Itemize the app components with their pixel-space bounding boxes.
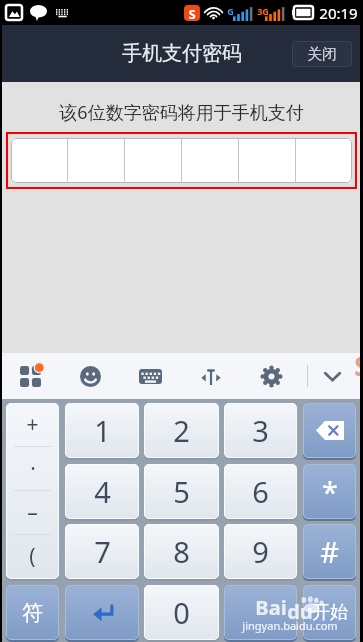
button[interactable]: 6 <box>224 464 297 519</box>
button[interactable]: 3 <box>224 403 297 458</box>
button[interactable]: Return <box>65 585 139 640</box>
staticText: 2 <box>173 411 190 450</box>
staticText: 开始 <box>312 601 348 624</box>
staticText: 5 <box>173 472 190 511</box>
staticText: + <box>26 410 39 439</box>
staticText: S <box>354 348 363 383</box>
button[interactable]: 符 <box>6 585 59 640</box>
staticText: jingyan.baidu.com <box>242 618 338 633</box>
staticText: * <box>322 472 338 511</box>
staticText: · <box>30 454 36 483</box>
button[interactable]: Keyboard <box>120 353 180 399</box>
staticText: 20:19 <box>319 3 358 23</box>
button[interactable]: 2 <box>144 403 219 458</box>
button[interactable]: 7 <box>65 524 139 579</box>
staticText: 1 <box>94 411 111 450</box>
staticText: G <box>227 5 234 17</box>
staticText: 3 <box>252 411 269 450</box>
staticText: 关闭 <box>307 45 337 64</box>
button[interactable]: 关闭 <box>292 41 352 67</box>
staticText: 8 <box>173 532 190 571</box>
button[interactable]: Apps <box>0 353 60 399</box>
button[interactable]: 1 <box>65 403 139 458</box>
button[interactable]: 开始 <box>303 585 356 640</box>
staticText: – <box>27 498 38 527</box>
staticText: Bai <box>255 594 287 621</box>
button[interactable]: Cursor <box>180 353 241 399</box>
button[interactable]: Settings <box>241 353 302 399</box>
button[interactable]: # <box>303 524 356 579</box>
staticText: 9 <box>252 532 269 571</box>
button[interactable]: Symbols <box>6 403 59 579</box>
button[interactable]: 4 <box>65 464 139 519</box>
staticText: # <box>320 532 339 571</box>
button[interactable]: Space <box>224 585 297 640</box>
staticText: S <box>188 5 196 21</box>
button[interactable]: 8 <box>144 524 219 579</box>
staticText: 6 <box>252 472 269 511</box>
button[interactable]: Hide keyboard <box>302 353 363 399</box>
button[interactable]: 5 <box>144 464 219 519</box>
staticText: 7 <box>94 532 111 571</box>
staticText: 该6位数字密码将用于手机支付 <box>59 100 304 125</box>
staticText: 0 <box>173 593 190 632</box>
staticText: 手机支付密码 <box>122 41 242 66</box>
staticText: 4 <box>94 472 111 511</box>
staticText: ( <box>29 542 36 571</box>
staticText: 3G <box>257 5 269 17</box>
staticText: du <box>287 598 313 620</box>
button[interactable]: 9 <box>224 524 297 579</box>
button[interactable]: Backspace <box>303 403 356 458</box>
button[interactable]: Emoji <box>60 353 120 399</box>
button[interactable]: 0 <box>144 585 219 640</box>
button[interactable]: * <box>303 464 356 519</box>
staticText: 符 <box>22 600 43 626</box>
